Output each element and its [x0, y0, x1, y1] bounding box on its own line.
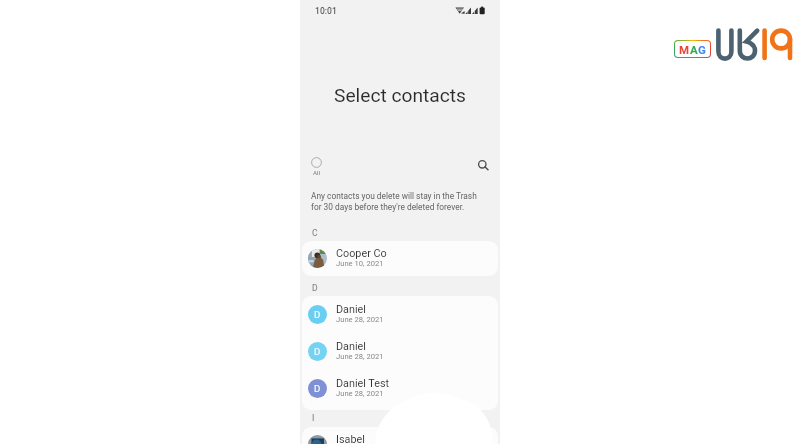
staticText: D [312, 283, 318, 293]
staticText: Any contacts you delete will stay in the… [311, 191, 477, 212]
staticText: Cooper Co [336, 247, 387, 260]
staticText: June 28, 2021 [336, 389, 384, 398]
staticText: June 10, 2021 [336, 259, 384, 268]
staticText: June 28, 2021 [336, 352, 384, 361]
staticText: M [679, 43, 690, 56]
staticText: June 28, 2021 [336, 315, 384, 324]
staticText: Daniel Test [336, 377, 390, 390]
button[interactable]: D [302, 333, 498, 370]
staticText: C [312, 228, 318, 238]
staticText: G [698, 43, 706, 56]
button[interactable]: Isabel [302, 427, 498, 444]
staticText: Daniel [336, 340, 366, 353]
staticText: All [313, 169, 321, 176]
staticText: A [690, 43, 698, 56]
button[interactable]: D [302, 370, 498, 407]
staticText: D [314, 383, 321, 394]
staticText: Isabel [336, 433, 365, 444]
staticText: Daniel [336, 303, 366, 316]
button[interactable]: D [302, 296, 498, 333]
button[interactable]: All [311, 157, 322, 176]
staticText: Select contacts [300, 84, 500, 107]
button[interactable]: Cooper Co [302, 241, 498, 276]
staticText: D [314, 309, 321, 320]
staticText: 10:01 [315, 6, 337, 16]
staticText: D [314, 346, 321, 357]
button[interactable]: Search [476, 157, 492, 173]
staticText: I [312, 413, 315, 423]
